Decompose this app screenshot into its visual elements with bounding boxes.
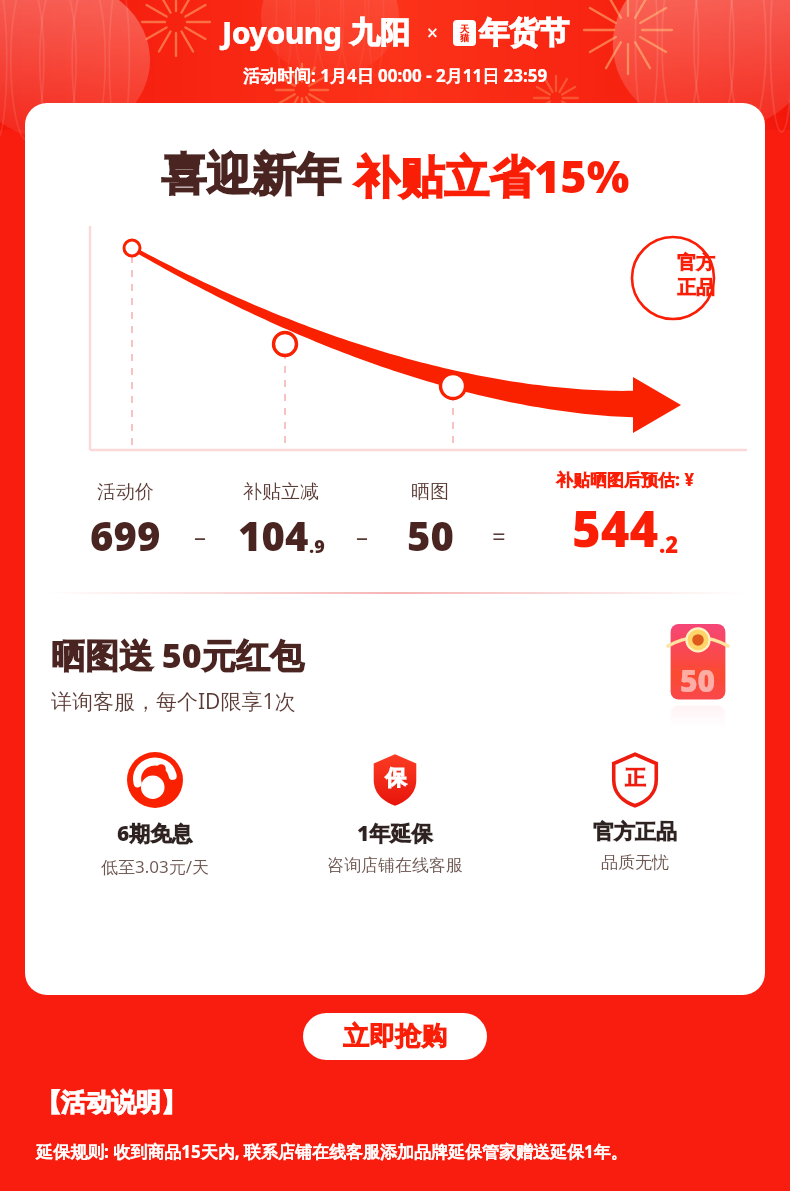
staticText: 喜迎新年 bbox=[161, 147, 341, 204]
staticText: 50 bbox=[680, 660, 716, 701]
staticText: 详询客服，每个ID限享1次 bbox=[51, 687, 296, 716]
staticText: 补贴立省15% bbox=[354, 145, 630, 206]
staticText: 低至3.03元/天 bbox=[101, 855, 210, 878]
staticText: × bbox=[427, 20, 438, 46]
staticText: 延保规则: 收到商品15天内, 联系店铺在线客服添加品牌延保管家赠送延保1年。 bbox=[36, 1140, 628, 1163]
staticText: 699 bbox=[90, 508, 161, 562]
staticText: Joyoung bbox=[222, 12, 342, 53]
staticText: 活动时间: 1月4日 00:00 - 2月11日 23:59 bbox=[243, 64, 548, 87]
button[interactable]: 保 bbox=[275, 752, 515, 876]
staticText: = bbox=[492, 519, 506, 552]
staticText: 晒图 bbox=[411, 480, 449, 504]
staticText: .9 bbox=[309, 534, 325, 559]
other: 保 bbox=[367, 752, 423, 808]
staticText: 活动价 bbox=[97, 480, 154, 504]
staticText: 品质无忧 bbox=[601, 852, 669, 873]
staticText: 补贴晒图后预估: ¥ bbox=[556, 468, 695, 491]
staticText: 补贴立减 bbox=[243, 480, 319, 504]
staticText: 保 bbox=[385, 765, 406, 791]
staticText: 正 bbox=[625, 765, 646, 791]
staticText: – bbox=[356, 519, 368, 552]
staticText: 6期免息 bbox=[117, 819, 193, 848]
staticText: 天 猫 bbox=[460, 23, 469, 44]
staticText: 104 bbox=[238, 508, 309, 562]
staticText: 官方 bbox=[677, 251, 715, 275]
button[interactable]: 正 bbox=[515, 752, 755, 873]
staticText: 544 bbox=[572, 495, 659, 562]
button[interactable]: 6期免息 bbox=[35, 752, 275, 878]
staticText: 正品 bbox=[677, 276, 715, 300]
other: 6期免息 bbox=[127, 752, 183, 808]
staticText: 50 bbox=[407, 508, 454, 562]
staticText: 立即抢购 bbox=[343, 1020, 447, 1053]
staticText: 晒图送 50元红包 bbox=[51, 632, 304, 678]
staticText: 年货节 bbox=[479, 14, 569, 52]
staticText: .2 bbox=[659, 529, 679, 559]
staticText: 【活动说明】 bbox=[36, 1087, 186, 1118]
staticText: 九阳 bbox=[350, 14, 410, 52]
other: 正 bbox=[607, 752, 663, 808]
staticText: 1年延保 bbox=[357, 819, 433, 848]
staticText: – bbox=[194, 519, 206, 552]
staticText: 咨询店铺在线客服 bbox=[327, 855, 463, 876]
button[interactable]: 立即抢购 bbox=[303, 1013, 487, 1060]
staticText: 官方正品 bbox=[593, 819, 677, 845]
